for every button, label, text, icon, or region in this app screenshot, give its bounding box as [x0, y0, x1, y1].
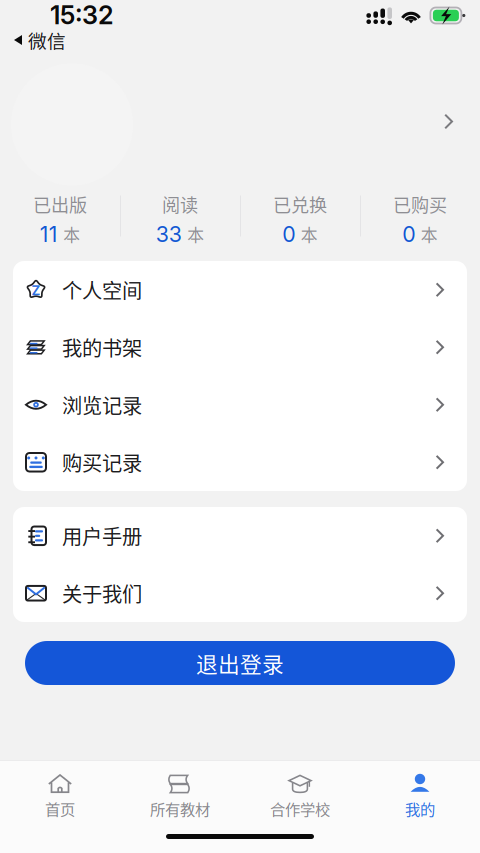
staticText: 合作学校 — [270, 797, 330, 820]
staticText: 微信 — [28, 26, 66, 53]
staticText: 个人空间 — [62, 275, 142, 304]
button[interactable]: 我的 — [360, 761, 480, 819]
staticText: 15:32 — [50, 0, 114, 30]
staticText: 本 — [301, 222, 318, 246]
staticText: 本 — [421, 222, 438, 246]
button[interactable]: 我的书架 — [13, 318, 467, 376]
button[interactable] — [0, 45, 480, 186]
staticText: 用户手册 — [62, 521, 142, 550]
button[interactable]: Z — [13, 261, 467, 318]
staticText: 我的书架 — [62, 333, 142, 362]
staticText: 我的 — [405, 797, 435, 820]
button[interactable]: 用户手册 — [13, 507, 467, 564]
staticText: 首页 — [45, 797, 75, 820]
button[interactable]: 首页 — [0, 761, 120, 819]
button[interactable]: 购买记录 — [13, 433, 467, 491]
staticText: 已购买 — [393, 191, 447, 217]
button[interactable]: 合作学校 — [240, 761, 360, 819]
staticText: 本 — [187, 222, 204, 246]
staticText: 0 — [282, 221, 295, 247]
staticText: 购买记录 — [62, 448, 142, 477]
staticText: 33 — [156, 221, 182, 247]
button[interactable]: 所有教材 — [120, 761, 240, 819]
staticText: 已兑换 — [273, 191, 327, 217]
staticText: Z — [31, 282, 40, 298]
staticText: 退出登录 — [196, 647, 284, 679]
staticText: 11 — [40, 221, 58, 247]
button[interactable]: 浏览记录 — [13, 376, 467, 433]
button[interactable]: 关于我们 — [13, 564, 467, 622]
staticText: 所有教材 — [150, 797, 210, 820]
staticText: 本 — [63, 222, 80, 246]
button[interactable]: 退出登录 — [25, 641, 455, 685]
staticText: 关于我们 — [62, 579, 142, 608]
staticText: 阅读 — [162, 191, 198, 217]
staticText: 浏览记录 — [62, 390, 142, 419]
staticText: 0 — [402, 221, 415, 247]
staticText: 已出版 — [33, 191, 87, 217]
